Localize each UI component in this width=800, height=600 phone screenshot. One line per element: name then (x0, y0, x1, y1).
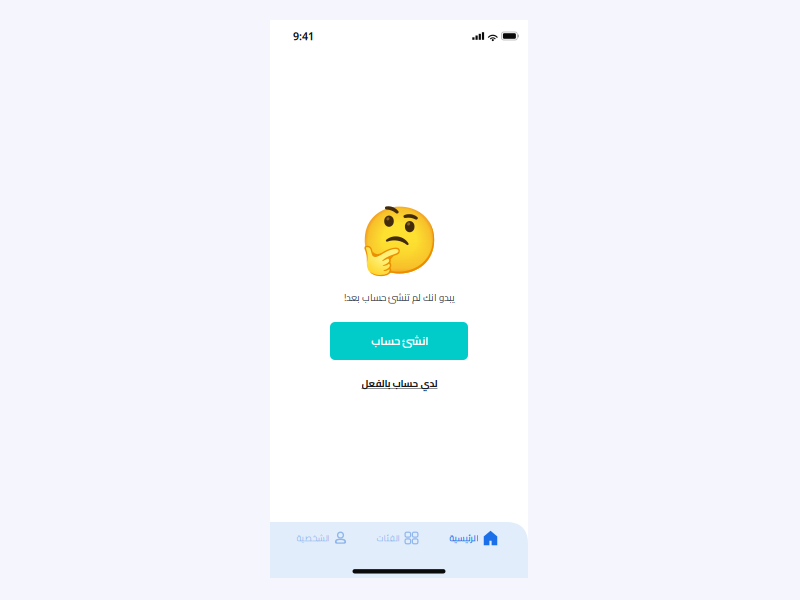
staticText: انشئ حساب (370, 331, 427, 351)
button[interactable]: لدي حساب بالفعل (353, 374, 445, 393)
staticText: الفئات (376, 530, 399, 546)
staticText: الرئيسية (449, 530, 478, 546)
staticText: 🤔 (358, 203, 439, 278)
button[interactable]: الرئيسية (435, 524, 511, 552)
staticText: 9:41 (293, 29, 314, 43)
staticText: يبدو انك لم تنشئ حساب بعد! (343, 288, 454, 307)
button[interactable]: انشئ حساب (330, 322, 468, 360)
staticText: لدي حساب بالفعل (361, 374, 437, 393)
staticText: الشخصية (296, 530, 329, 546)
button[interactable]: الفئات (359, 524, 435, 552)
button[interactable]: الشخصية (283, 524, 359, 552)
